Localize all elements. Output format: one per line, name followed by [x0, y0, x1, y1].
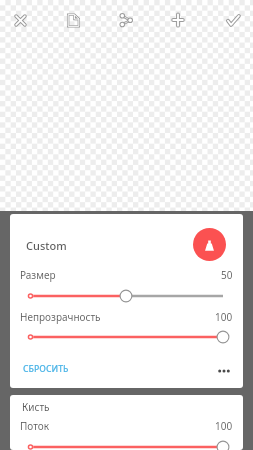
staticText: 50 — [221, 268, 233, 282]
staticText: Кисть — [22, 400, 50, 414]
staticText: Custom — [26, 238, 67, 253]
button[interactable]: Brush tool — [193, 228, 226, 261]
button[interactable]: New document — [57, 4, 89, 36]
button[interactable]: Непрозрачность — [10, 327, 243, 347]
button[interactable]: Close — [4, 4, 36, 36]
staticText: СБРОСИТЬ — [23, 363, 69, 375]
staticText: Поток — [20, 419, 49, 433]
staticText: Размер — [20, 268, 56, 282]
staticText: 100 — [215, 419, 233, 433]
button[interactable]: СБРОСИТЬ — [19, 356, 73, 382]
button[interactable]: Поток — [10, 437, 243, 450]
button[interactable]: Share — [110, 4, 142, 36]
staticText: 100 — [215, 310, 233, 324]
button[interactable]: More options — [212, 359, 236, 383]
button[interactable]: Done — [217, 5, 249, 37]
button[interactable]: Add — [162, 4, 194, 36]
button[interactable]: Размер — [10, 286, 243, 306]
staticText: Непрозрачность — [20, 310, 101, 324]
